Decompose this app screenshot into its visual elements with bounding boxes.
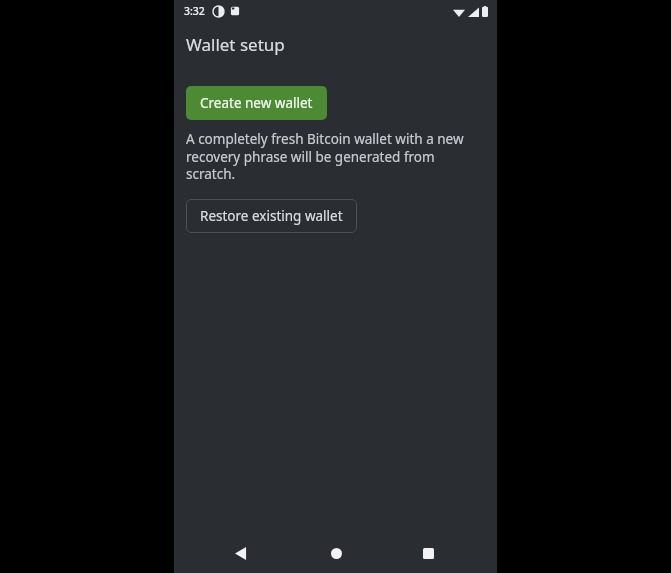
staticText: Wallet setup xyxy=(186,33,285,56)
staticText: A completely fresh Bitcoin wallet with a… xyxy=(186,130,487,183)
staticText: Restore existing wallet xyxy=(200,207,343,225)
staticText: 3:32 xyxy=(184,4,205,18)
button[interactable]: Back xyxy=(226,538,256,568)
staticText: Create new wallet xyxy=(200,94,313,112)
button[interactable]: Recent apps xyxy=(413,538,443,568)
button[interactable]: Restore existing wallet xyxy=(186,199,357,233)
button[interactable]: Home xyxy=(321,538,351,568)
button[interactable]: Create new wallet xyxy=(186,86,327,120)
